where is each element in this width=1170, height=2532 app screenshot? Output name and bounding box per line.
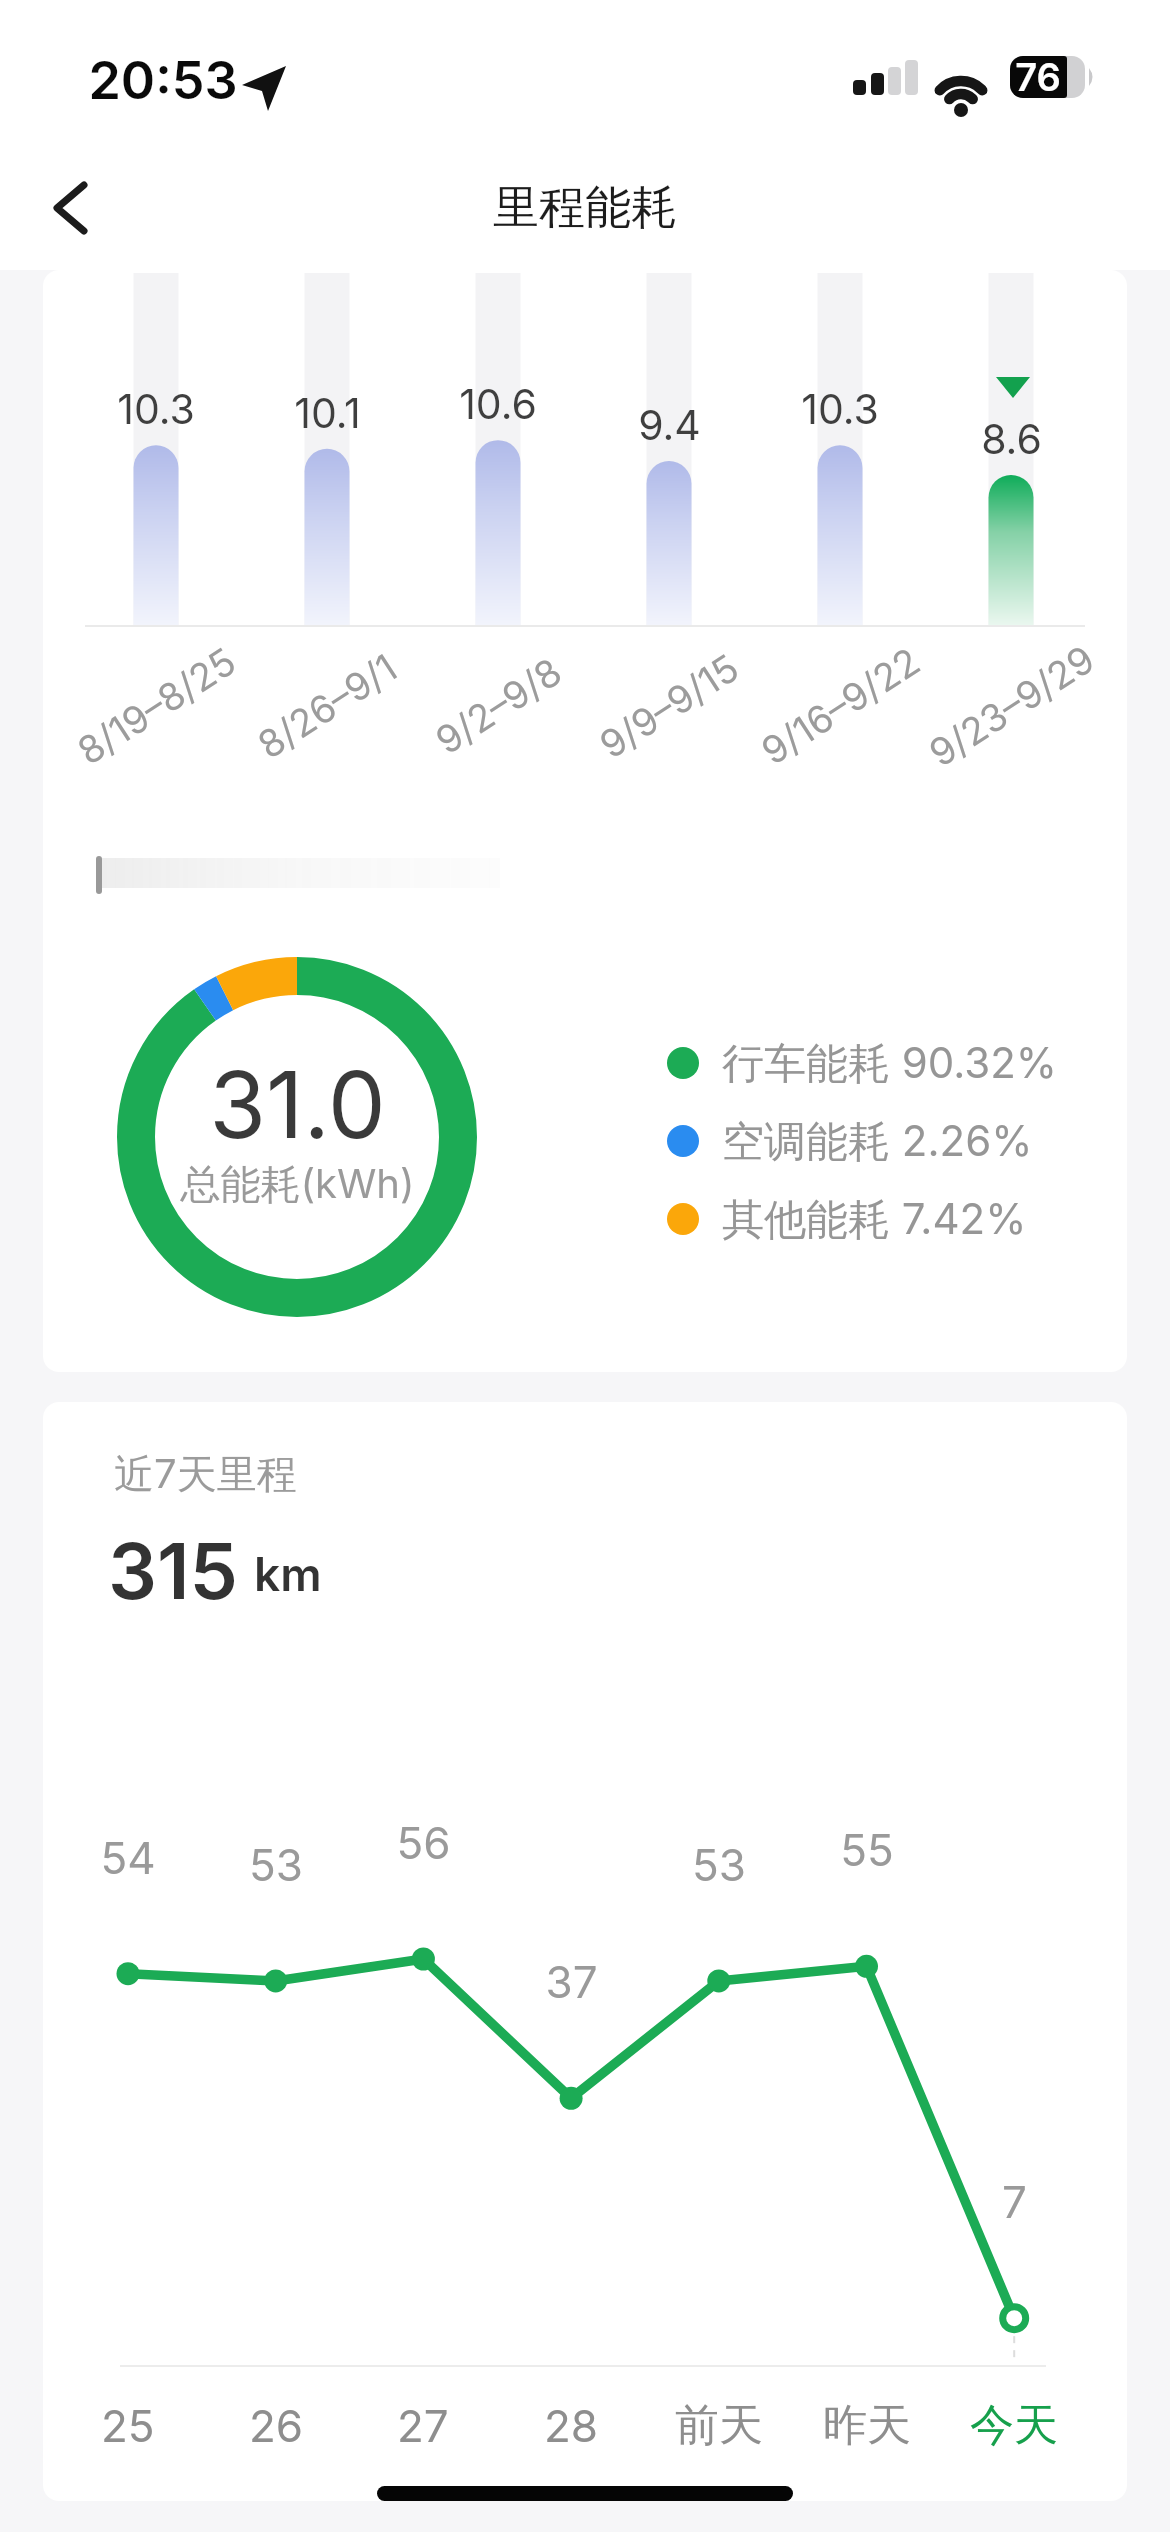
staticText: 里程能耗 (493, 179, 677, 237)
staticText: 56 (396, 1816, 451, 1869)
staticText: 10.3 (117, 384, 195, 434)
staticText: 37 (545, 1955, 598, 2008)
staticText: 9/9–9/15 (591, 644, 747, 768)
staticText: 9.4 (638, 400, 701, 450)
staticText: 7 (1002, 2175, 1027, 2228)
staticText: 10.3 (801, 384, 879, 434)
staticText: 53 (249, 1838, 303, 1891)
staticText: 26 (249, 2399, 304, 2452)
staticText: 10.1 (294, 388, 361, 438)
staticText: 8/19–8/25 (69, 638, 244, 774)
button[interactable]: 26 (196, 2393, 356, 2457)
staticText: 53 (692, 1838, 746, 1891)
staticText: 20:53 (88, 49, 238, 112)
staticText: 8.6 (981, 414, 1042, 464)
staticText: 28 (544, 2399, 599, 2452)
staticText: 今天 (970, 2398, 1058, 2453)
button[interactable]: 25 (48, 2393, 208, 2457)
button[interactable]: 今天 (934, 2393, 1094, 2457)
staticText: 近7天里程 (114, 1449, 297, 1500)
button[interactable]: 27 (343, 2393, 503, 2457)
staticText: 315 (108, 1524, 238, 1617)
staticText: 前天 (675, 2398, 763, 2453)
button[interactable]: 28 (491, 2393, 651, 2457)
staticText: 76 (1015, 54, 1061, 100)
button[interactable]: 昨天 (787, 2393, 947, 2457)
staticText: 空调能耗 2.26% (722, 1115, 1033, 1168)
staticText: 10.6 (459, 379, 537, 429)
staticText: 9/2–9/8 (427, 648, 570, 763)
staticText: 27 (397, 2399, 449, 2452)
staticText: 总能耗(kWh) (180, 1159, 415, 1210)
staticText: 9/23–9/29 (920, 635, 1102, 776)
staticText: km (254, 1546, 322, 1602)
staticText: 25 (101, 2399, 155, 2452)
staticText: 55 (840, 1823, 894, 1876)
staticText: 8/26–9/1 (249, 644, 405, 768)
staticText: 54 (100, 1831, 156, 1884)
button[interactable] (30, 175, 110, 245)
button[interactable]: 前天 (639, 2393, 799, 2457)
staticText: 行车能耗 90.32% (722, 1037, 1058, 1090)
staticText: 31.0 (209, 1049, 386, 1160)
staticText: 9/16–9/22 (753, 638, 928, 774)
staticText: 其他能耗 7.42% (722, 1193, 1027, 1246)
staticText: 昨天 (823, 2398, 911, 2453)
